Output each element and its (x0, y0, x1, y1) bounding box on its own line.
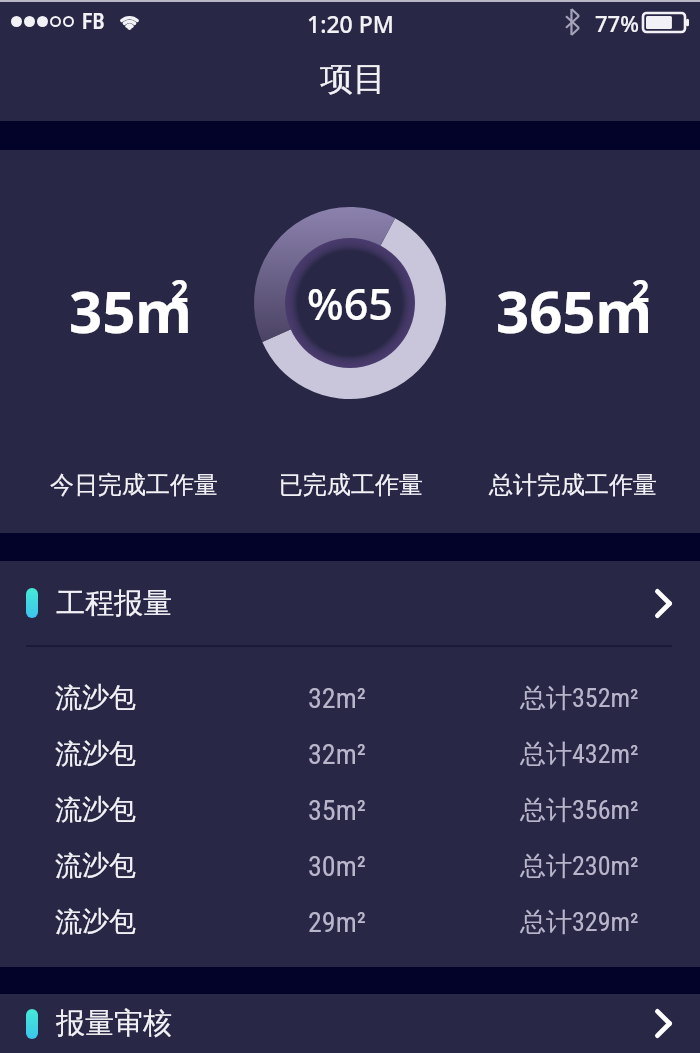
staticText: 2 (632, 270, 650, 311)
staticText: 流沙包 (55, 737, 136, 771)
staticText: 29m² (308, 906, 366, 939)
staticText: 今日完成工作量 (50, 470, 218, 500)
staticText: 总计356m² (520, 794, 639, 827)
staticText: 流沙包 (55, 849, 136, 883)
button[interactable]: 流沙包 (0, 894, 700, 950)
staticText: 项目 (320, 58, 386, 100)
staticText: 流沙包 (55, 905, 136, 939)
staticText: 总计230m² (520, 850, 639, 883)
button[interactable]: 流沙包 (0, 670, 700, 726)
button[interactable]: 工程报量 (0, 561, 700, 647)
staticText: 32m² (308, 738, 366, 771)
staticText: 77% (595, 8, 639, 38)
staticText: 30m² (308, 850, 366, 883)
staticText: 365m (496, 271, 653, 350)
staticText: 报量审核 (56, 1005, 172, 1042)
other: Open 报量审核 (655, 1009, 672, 1038)
staticText: 流沙包 (55, 681, 136, 715)
staticText: 总计432m² (520, 738, 639, 771)
staticText: 2 (171, 270, 189, 311)
button[interactable]: 报量审核 (0, 994, 700, 1053)
staticText: 总计完成工作量 (489, 470, 657, 500)
staticText: 总计352m² (520, 682, 639, 715)
staticText: FB (82, 9, 105, 35)
button[interactable]: 流沙包 (0, 726, 700, 782)
staticText: 工程报量 (56, 585, 172, 622)
staticText: %65 (307, 274, 393, 333)
staticText: 1:20 PM (307, 8, 394, 39)
staticText: 已完成工作量 (279, 470, 423, 500)
staticText: 35m² (308, 794, 366, 827)
staticText: 32m² (308, 682, 366, 715)
staticText: 35m (69, 271, 192, 350)
other: Open 工程报量 (655, 589, 672, 618)
button[interactable]: 流沙包 (0, 838, 700, 894)
button[interactable]: 流沙包 (0, 782, 700, 838)
staticText: 流沙包 (55, 793, 136, 827)
staticText: 总计329m² (520, 906, 639, 939)
